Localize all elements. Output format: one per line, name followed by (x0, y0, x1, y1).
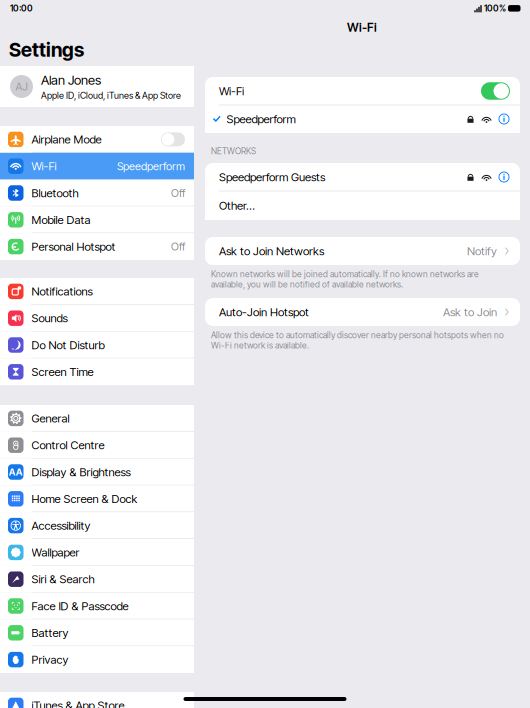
button[interactable]: Airplane Mode (0, 126, 194, 153)
staticText: Ask to Join Networks (219, 244, 324, 258)
staticText: Allow this device to automatically disco… (211, 330, 504, 351)
button[interactable]: Wallpaper (0, 539, 194, 566)
staticText: General (31, 411, 69, 425)
staticText: Privacy (31, 653, 68, 667)
button[interactable]: Face ID & Passcode (0, 593, 194, 619)
staticText: Settings (9, 38, 84, 61)
staticText: Control Centre (31, 438, 104, 452)
button[interactable]: Mobile Data (0, 206, 194, 233)
staticText: Known networks will be joined automatica… (211, 269, 479, 290)
button[interactable]: Auto-Join Hotspot (205, 298, 520, 326)
button[interactable]: Home Screen & Dock (0, 485, 194, 512)
staticText: Siri & Search (31, 572, 94, 586)
staticText: Notify (467, 244, 497, 258)
staticText: Speedperform Guests (219, 170, 325, 184)
staticText: Screen Time (31, 365, 93, 379)
staticText: Auto-Join Hotspot (219, 305, 309, 319)
staticText: AA (9, 466, 23, 478)
button[interactable]: Do Not Disturb (0, 332, 194, 358)
button[interactable]: Accessibility (0, 512, 194, 539)
button[interactable]: Wi-Fi (0, 153, 194, 180)
button[interactable]: Ask to Join Networks (205, 237, 520, 265)
staticText: NETWORKS (211, 146, 256, 156)
staticText: AJ (15, 80, 27, 93)
staticText: Off (171, 240, 185, 253)
staticText: Accessibility (31, 519, 90, 533)
staticText: Airplane Mode (31, 132, 101, 146)
staticText: Sounds (31, 311, 67, 325)
button[interactable]: Screen Time (0, 358, 194, 385)
staticText: Wi-Fi (347, 20, 377, 34)
button[interactable]: Sounds (0, 305, 194, 332)
staticText: Bluetooth (31, 186, 78, 200)
staticText: Home Screen & Dock (31, 492, 137, 506)
button[interactable]: Control Centre (0, 432, 194, 459)
button[interactable]: Bluetooth (0, 180, 194, 206)
staticText: Mobile Data (31, 213, 90, 227)
button[interactable]: Siri & Search (0, 566, 194, 593)
staticText: Battery (31, 626, 68, 640)
button[interactable]: Notifications (0, 278, 194, 305)
button[interactable]: Battery (0, 619, 194, 646)
button[interactable]: Personal Hotspot (0, 233, 194, 260)
staticText: Wi-Fi (31, 159, 56, 173)
staticText: Alan Jones (41, 72, 101, 88)
staticText: Apple ID, iCloud, iTunes & App Store (41, 90, 181, 101)
button[interactable]: General (0, 405, 194, 432)
staticText: Speedperform (117, 160, 185, 173)
staticText: Other… (219, 199, 255, 212)
staticText: Off (171, 186, 185, 200)
staticText: Wallpaper (31, 545, 79, 559)
staticText: Wi-Fi (219, 84, 244, 98)
staticText: Personal Hotspot (31, 240, 115, 254)
staticText: Speedperform (226, 112, 295, 126)
staticText: Notifications (31, 284, 92, 298)
staticText: Do Not Disturb (31, 338, 104, 352)
staticText: iTunes & App Store (31, 698, 124, 708)
button[interactable]: Privacy (0, 646, 194, 673)
staticText: 10:00 (10, 3, 33, 14)
button[interactable]: AA (0, 459, 194, 485)
button[interactable]: AJ (0, 66, 194, 107)
staticText: Ask to Join (443, 305, 497, 319)
button[interactable]: iTunes & App Store (0, 692, 194, 708)
staticText: Face ID & Passcode (31, 599, 128, 613)
staticText: Display & Brightness (31, 465, 130, 479)
staticText: 100% (484, 3, 506, 14)
